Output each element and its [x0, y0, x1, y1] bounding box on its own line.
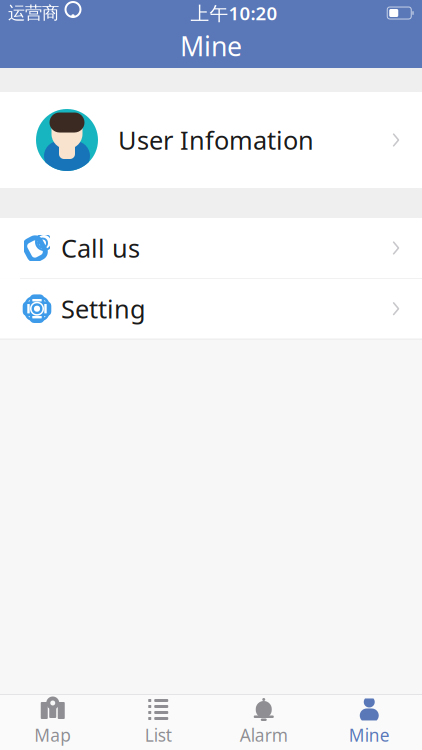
staticText: Mine — [180, 28, 242, 64]
button[interactable]: Call us — [0, 218, 422, 278]
button[interactable]: Map — [0, 696, 105, 748]
staticText: 运营商 — [8, 2, 59, 24]
staticText: Setting — [61, 292, 146, 325]
staticText: User Infomation — [118, 123, 314, 157]
button[interactable]: List — [105, 696, 211, 748]
button[interactable]: Mine — [316, 696, 422, 748]
staticText: 上午10:20 — [190, 1, 277, 25]
staticText: Mine — [349, 723, 390, 746]
staticText: Alarm — [240, 723, 288, 746]
button[interactable]: Setting — [0, 279, 422, 339]
button[interactable]: User Infomation — [0, 92, 422, 188]
button[interactable]: Alarm — [211, 696, 316, 748]
staticText: Map — [34, 723, 71, 746]
staticText: Call us — [61, 231, 140, 265]
staticText: List — [145, 723, 172, 746]
